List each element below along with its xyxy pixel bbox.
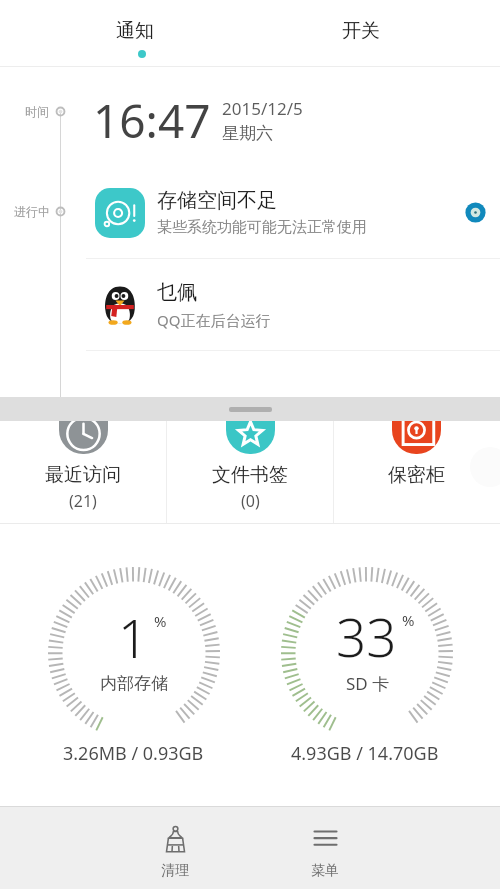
button[interactable]: 通知	[55, 0, 215, 66]
staticText: 1	[118, 601, 149, 673]
staticText: 保密柜	[388, 463, 445, 487]
staticText: (21)	[69, 490, 97, 512]
button[interactable]: 乜佩	[86, 259, 500, 350]
staticText: 存储空间不足	[157, 188, 277, 213]
button[interactable]: 文件书签	[166, 421, 333, 523]
staticText: 内部存储	[100, 673, 168, 694]
staticText: 进行中	[14, 204, 50, 219]
button[interactable]: 存储空间不足	[86, 167, 500, 258]
staticText: 16:47	[93, 89, 211, 152]
staticText: 3.26MB / 0.93GB	[63, 741, 204, 766]
staticText: 文件书签	[212, 463, 288, 487]
staticText: 乜佩	[157, 280, 197, 305]
staticText: 开关	[342, 19, 380, 43]
staticText: 某些系统功能可能无法正常使用	[157, 218, 367, 237]
button[interactable]: 最近访问	[0, 421, 166, 523]
staticText: %	[154, 611, 167, 631]
staticText: (0)	[241, 490, 260, 512]
staticText: 菜单	[311, 862, 339, 880]
staticText: 最近访问	[45, 463, 121, 487]
staticText: 33	[336, 600, 397, 672]
staticText: 4.93GB / 14.70GB	[291, 741, 439, 766]
staticText: 星期六	[222, 123, 273, 144]
staticText: QQ正在后台运行	[157, 310, 271, 330]
staticText: %	[402, 610, 415, 630]
button[interactable]: 开关	[281, 0, 441, 66]
staticText: 时间	[25, 104, 49, 119]
staticText: 2015/12/5	[222, 97, 303, 120]
staticText: SD 卡	[346, 672, 390, 695]
staticText: 通知	[116, 19, 154, 43]
button[interactable]: 菜单	[265, 806, 385, 889]
staticText: 清理	[161, 862, 189, 880]
button[interactable]: 清理	[115, 806, 235, 889]
button[interactable]: 保密柜	[333, 421, 500, 523]
